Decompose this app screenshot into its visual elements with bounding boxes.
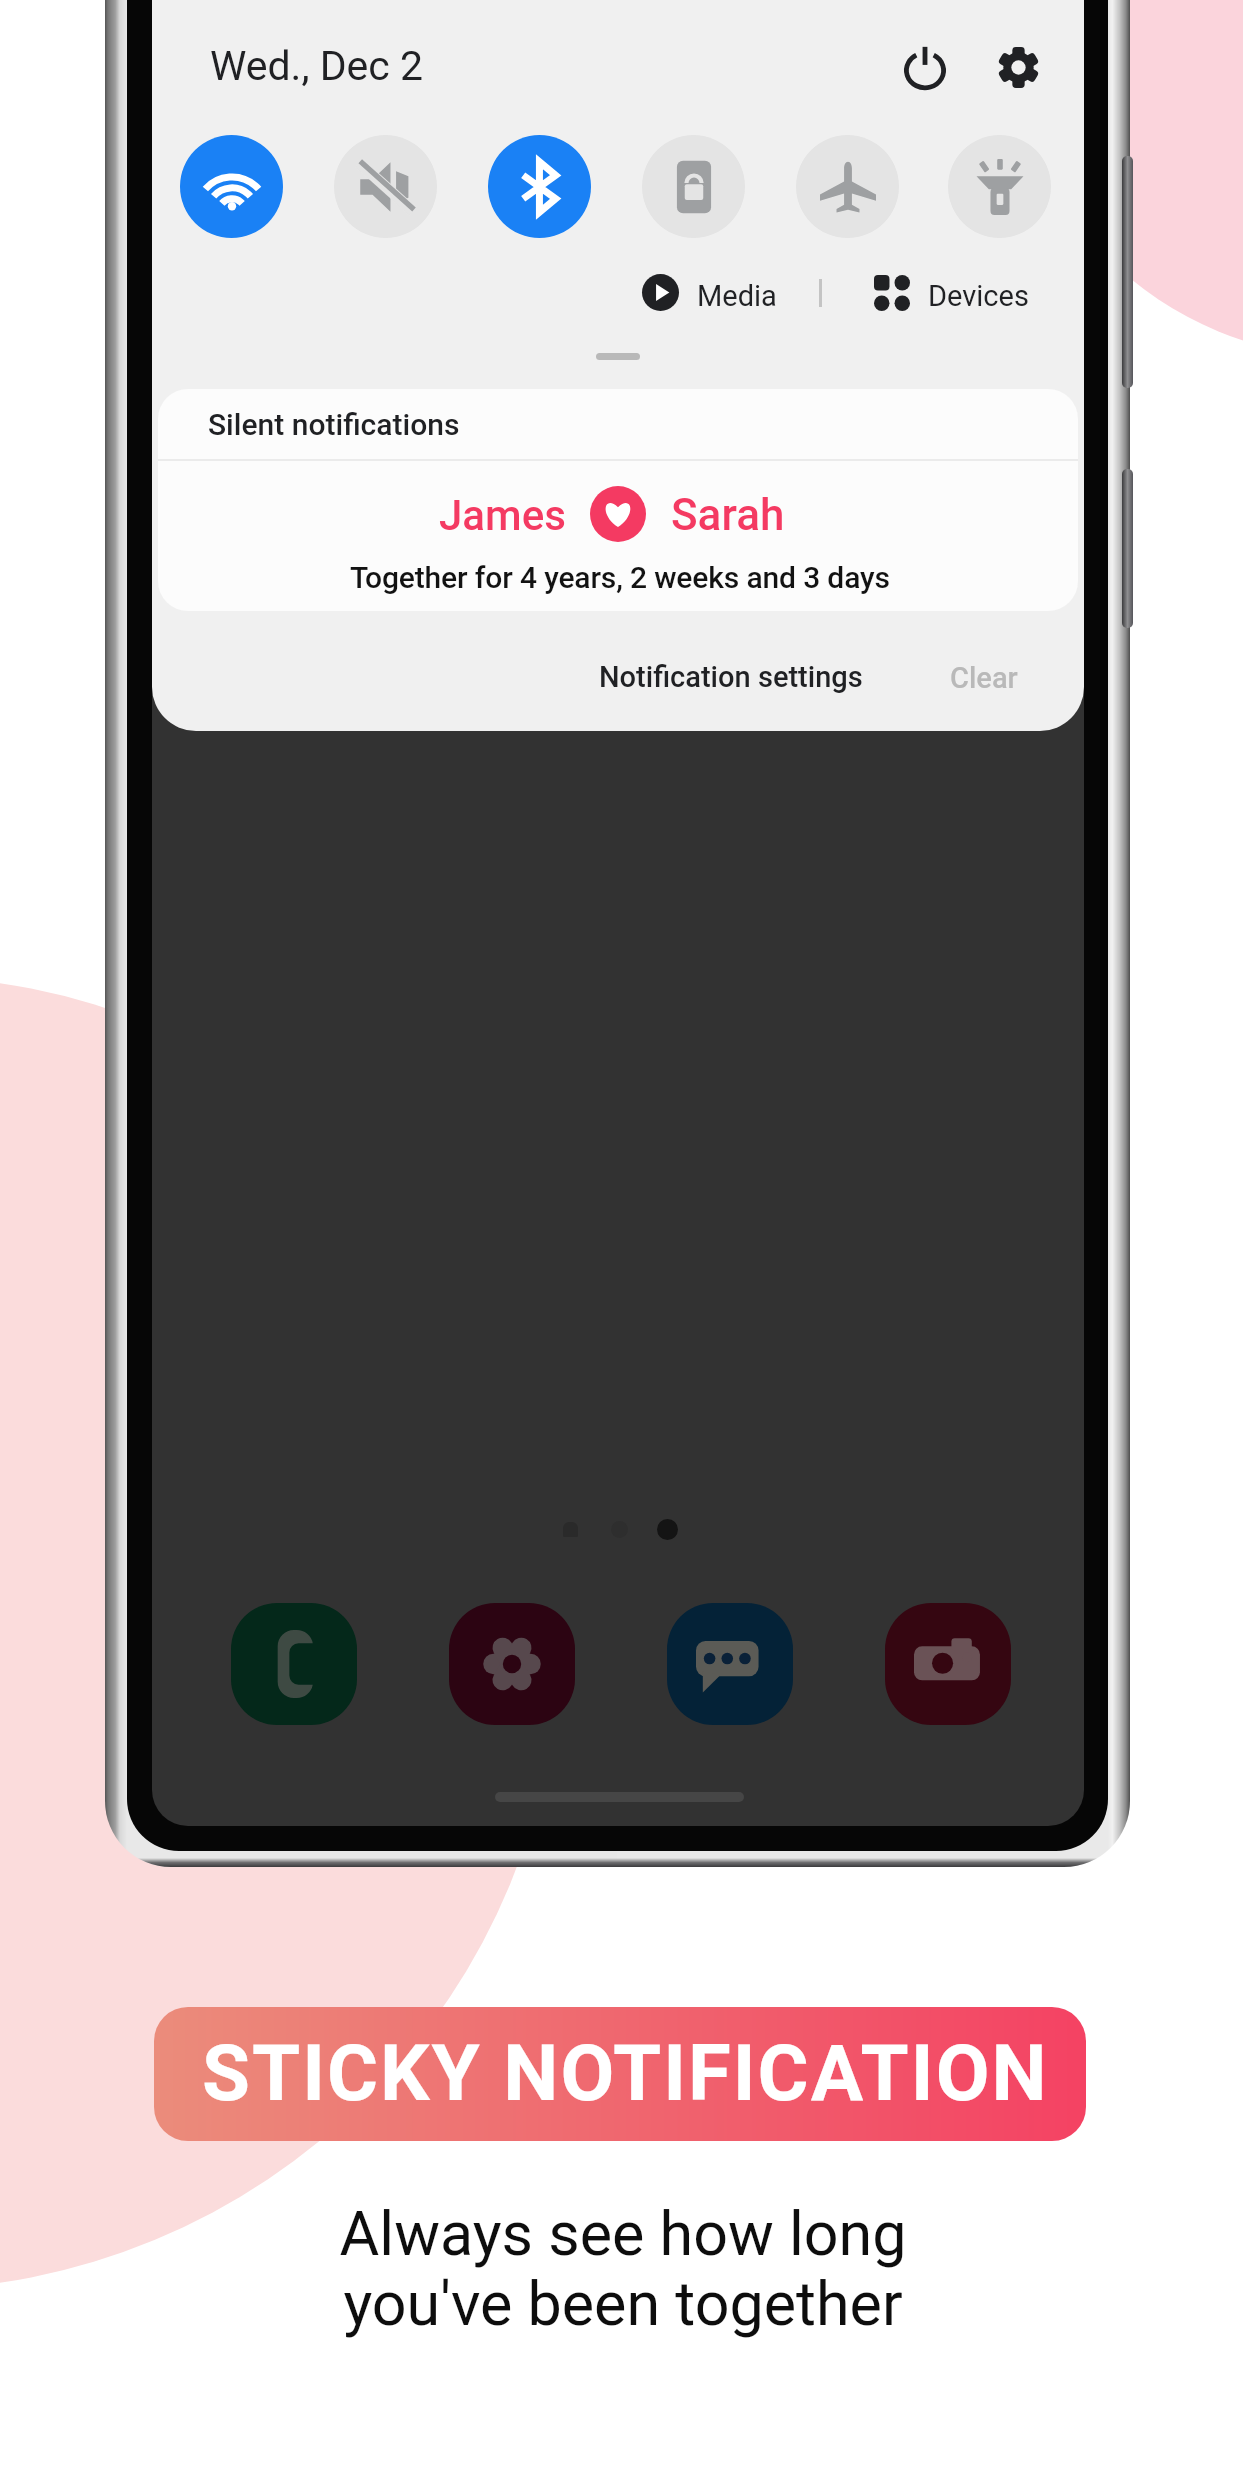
button[interactable]: Power	[887, 29, 963, 105]
button[interactable]: Devices	[866, 266, 1042, 318]
button[interactable]: Wi-Fi	[180, 135, 283, 238]
button[interactable]: Flashlight	[948, 135, 1051, 238]
button[interactable]: Sound off	[334, 135, 437, 238]
button[interactable]: Auto rotate lock	[642, 135, 745, 238]
staticText: Media	[697, 279, 777, 313]
button[interactable]: Settings	[980, 29, 1056, 105]
staticText: James	[439, 491, 566, 540]
button[interactable]: Bluetooth	[488, 135, 591, 238]
button[interactable]: Airplane mode	[796, 135, 899, 238]
staticText: Together for 4 years, 2 weeks and 3 days	[350, 560, 890, 595]
button[interactable]: Notification settings	[589, 645, 889, 701]
staticText: Clear	[950, 661, 1018, 695]
button[interactable]: STICKY NOTIFICATION	[154, 2007, 1086, 2141]
button[interactable]: Phone	[231, 1603, 357, 1725]
button[interactable]: Media	[634, 266, 784, 318]
button[interactable]: Gallery	[449, 1603, 575, 1725]
button[interactable]: Messages	[667, 1603, 793, 1725]
staticText: Wed., Dec 2	[210, 42, 423, 90]
button[interactable]: Camera	[885, 1603, 1011, 1725]
staticText: Silent notifications	[208, 407, 460, 442]
staticText: Devices	[928, 279, 1029, 313]
staticText: STICKY NOTIFICATION	[202, 2028, 1049, 2119]
staticText: Sarah	[671, 489, 785, 541]
button[interactable]: Clear	[940, 645, 1040, 701]
button[interactable]: Silent notifications	[158, 389, 1078, 611]
staticText: Always see how long you've been together	[323, 2198, 923, 2340]
staticText: Notification settings	[599, 660, 863, 694]
